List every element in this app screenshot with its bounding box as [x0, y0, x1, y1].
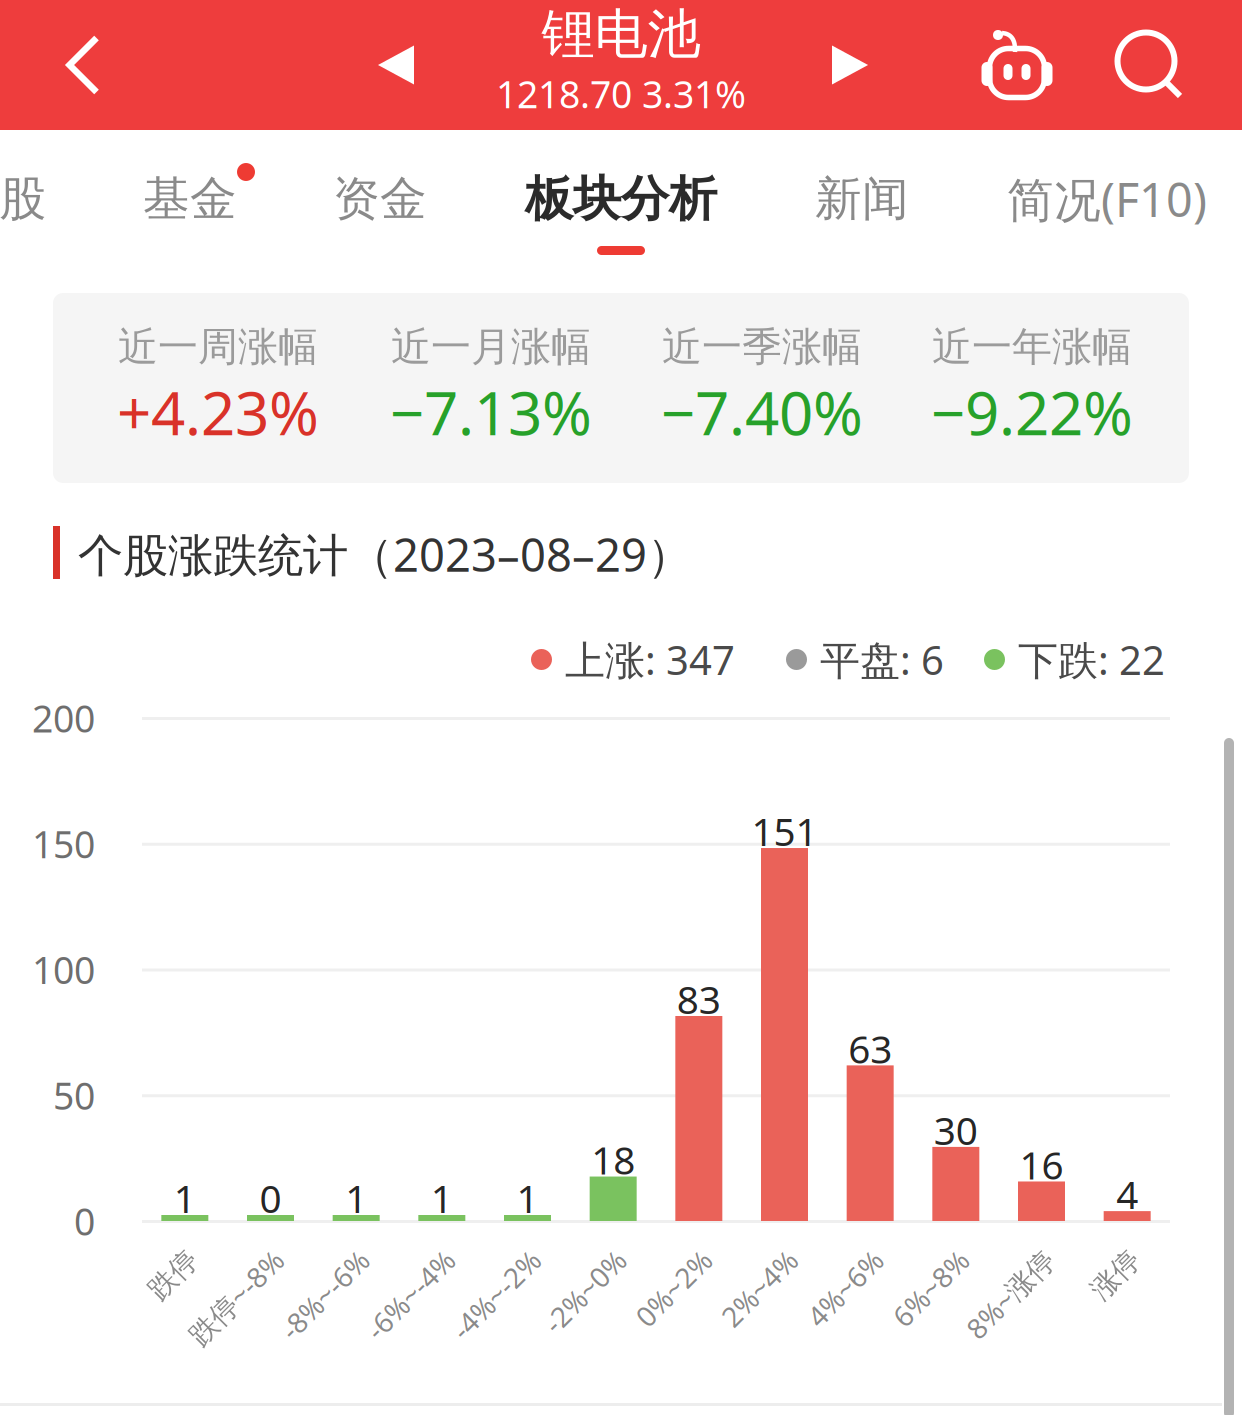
staticText: −7.40% — [661, 372, 863, 452]
staticText: −9.22% — [931, 372, 1133, 452]
staticText: 151 — [751, 805, 817, 857]
staticText: 1 — [345, 1172, 367, 1224]
staticText: 基金 — [143, 170, 237, 228]
staticText: 跌停~-8% — [158, 1236, 278, 1274]
button[interactable]: 基金 — [115, 130, 265, 285]
staticText: 1 — [516, 1172, 538, 1224]
staticText: 150 — [32, 819, 95, 869]
button[interactable]: 新闻 — [787, 130, 937, 285]
staticText: 近一周涨幅 — [118, 322, 318, 371]
staticText: 1 — [431, 1172, 453, 1224]
staticText: 简况(F10) — [1007, 168, 1207, 230]
button[interactable]: Next sector — [790, 0, 910, 130]
staticText: 63 — [848, 1023, 892, 1074]
staticText: 0 — [259, 1172, 281, 1224]
staticText: 近一季涨幅 — [662, 322, 862, 371]
staticText: 板块分析 — [525, 169, 717, 228]
staticText: -6%~-4% — [338, 1236, 450, 1274]
staticText: 200 — [32, 693, 95, 743]
staticText: 下跌: 22 — [1018, 633, 1165, 686]
staticText: 股 — [0, 170, 46, 228]
staticText: 近一月涨幅 — [391, 322, 591, 371]
staticText: 涨停 — [1079, 1238, 1135, 1272]
staticText: 0 — [74, 1196, 95, 1246]
staticText: -4%~-2% — [423, 1236, 535, 1274]
staticText: -8%~-6% — [252, 1236, 364, 1274]
staticText: -2%~0% — [518, 1236, 621, 1274]
button[interactable]: Search — [1079, 0, 1219, 130]
staticText: 0%~2% — [613, 1236, 707, 1274]
staticText: 83 — [677, 973, 721, 1025]
staticText: 个股涨跌统计（2023–08–29） — [78, 524, 692, 584]
staticText: 上涨: 347 — [565, 633, 735, 686]
staticText: 30 — [934, 1104, 978, 1155]
staticText: 2%~4% — [698, 1236, 792, 1274]
staticText: 6%~8% — [870, 1236, 964, 1274]
button[interactable]: AI assistant — [947, 0, 1087, 130]
staticText: 1218.70 3.31% — [496, 69, 746, 119]
button[interactable]: Back — [3, 0, 163, 130]
staticText: 资金 — [333, 170, 427, 228]
staticText: 跌停 — [137, 1238, 193, 1272]
button[interactable]: Previous sector — [336, 0, 456, 130]
staticText: 1 — [174, 1172, 196, 1224]
staticText: 4%~6% — [784, 1236, 878, 1274]
staticText: 平盘: 6 — [820, 633, 944, 686]
staticText: 锂电池 — [541, 1, 700, 67]
button[interactable]: 简况(F10) — [987, 130, 1227, 285]
staticText: 100 — [32, 945, 95, 994]
staticText: 新闻 — [815, 170, 909, 228]
staticText: −7.13% — [390, 372, 592, 452]
button[interactable]: 股 — [0, 130, 78, 285]
staticText: 4 — [1116, 1168, 1138, 1220]
staticText: 8%~涨停 — [938, 1236, 1049, 1274]
button[interactable]: 板块分析 — [501, 130, 741, 285]
button[interactable]: 资金 — [305, 130, 455, 285]
staticText: +4.23% — [117, 372, 319, 452]
staticText: 18 — [591, 1134, 635, 1185]
staticText: 16 — [1019, 1139, 1063, 1190]
staticText: 50 — [53, 1070, 95, 1120]
staticText: 近一年涨幅 — [932, 322, 1132, 371]
